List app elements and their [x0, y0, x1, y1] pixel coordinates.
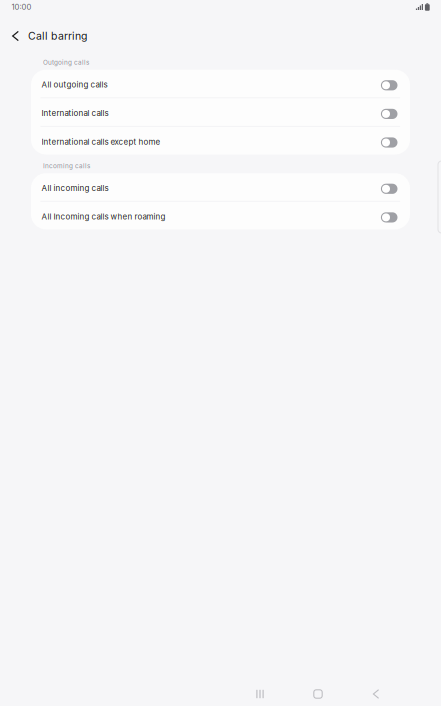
staticText: Call barring: [28, 30, 87, 42]
staticText: Outgoing calls: [43, 59, 89, 66]
staticText: All incoming calls: [41, 183, 108, 193]
button[interactable]: Back: [347, 682, 405, 706]
button[interactable]: International calls: [31, 98, 410, 126]
staticText: International calls except home: [41, 137, 160, 147]
staticText: 10:00: [11, 2, 31, 12]
staticText: All Incoming calls when roaming: [41, 212, 165, 222]
staticText: Incoming calls: [43, 162, 90, 170]
staticText: All outgoing calls: [41, 80, 107, 89]
button[interactable]: All outgoing calls: [31, 70, 410, 97]
button[interactable]: Home: [289, 682, 347, 706]
button[interactable]: All Incoming calls when roaming: [31, 202, 410, 229]
button[interactable]: International calls except home: [31, 127, 410, 154]
button[interactable]: Recent apps: [231, 682, 289, 706]
button[interactable]: All incoming calls: [31, 173, 410, 201]
button[interactable]: Back: [4, 25, 26, 47]
staticText: International calls: [41, 108, 108, 118]
